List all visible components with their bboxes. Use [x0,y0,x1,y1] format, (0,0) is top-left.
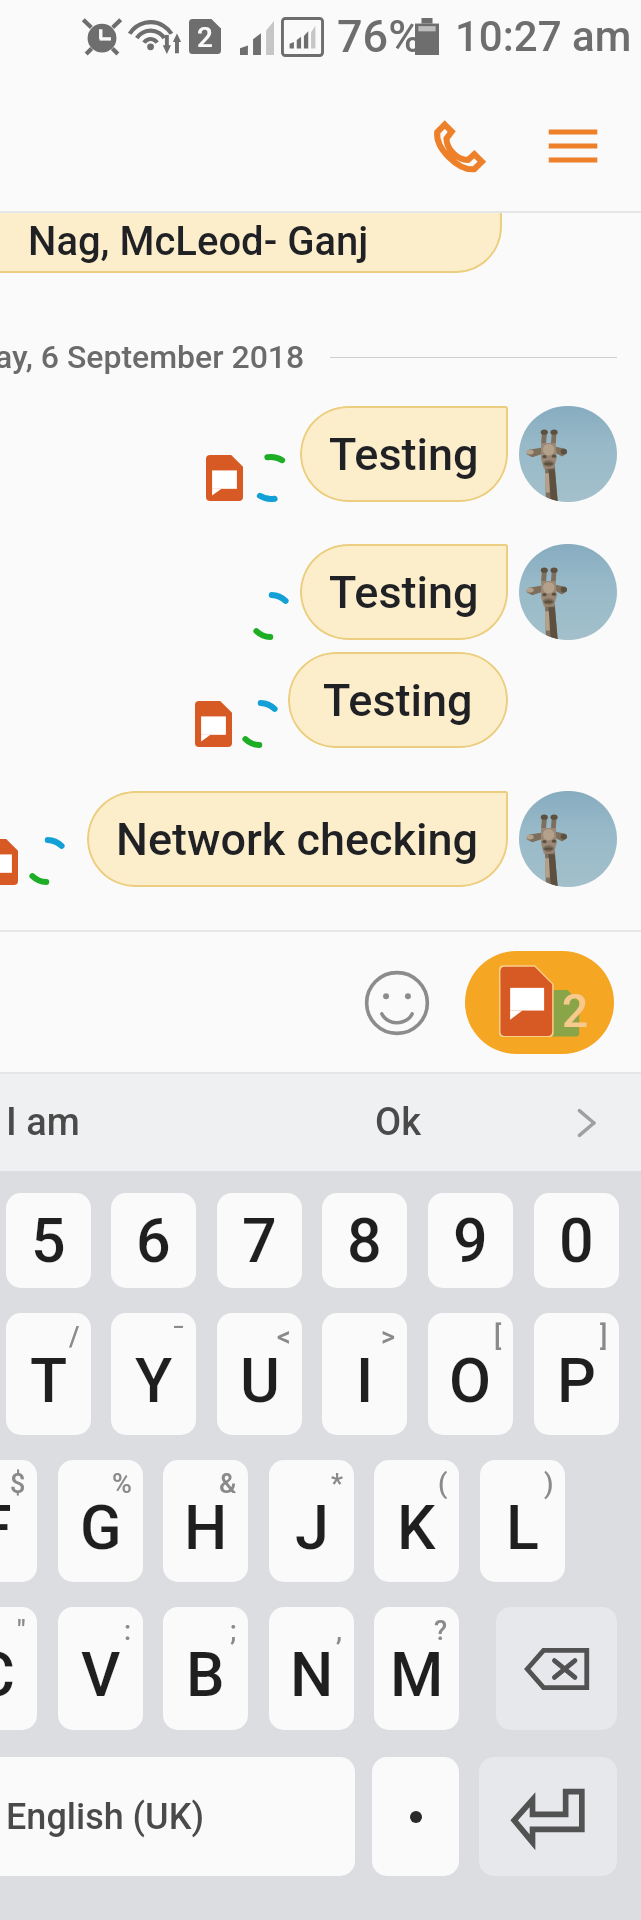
button[interactable]: Enter [479,1757,617,1876]
button[interactable]: V [58,1607,143,1730]
button[interactable]: Testing [300,544,508,640]
button[interactable]: H [163,1460,248,1582]
button[interactable]: B [163,1607,248,1730]
staticText: G [80,1492,122,1563]
button[interactable]: 9 [428,1193,513,1288]
button[interactable]: Testing [300,406,508,502]
staticText: Testing [329,566,479,619]
button[interactable]: Send message [465,951,614,1054]
staticText: > [381,1321,396,1353]
staticText: O [449,1345,492,1416]
button[interactable]: Y [111,1313,196,1435]
staticText: ; [230,1615,237,1647]
button[interactable]: U [217,1313,302,1435]
staticText: < [277,1321,291,1353]
button[interactable]: Call [413,98,509,194]
button[interactable]: Testing [288,652,508,748]
button[interactable]: Emoji [359,965,435,1041]
button[interactable]: I [322,1313,407,1435]
staticText: 7 [242,1205,277,1276]
staticText: 9 [453,1205,488,1276]
button[interactable]: Contact photo [519,544,617,640]
button[interactable]: Backspace [496,1607,617,1730]
button[interactable]: Nag, McLeod- Ganj [0,213,502,273]
staticText: M [390,1639,444,1710]
staticText: L [506,1492,539,1563]
button[interactable]: K [374,1460,459,1582]
staticText: " [17,1615,26,1647]
staticText: ? [434,1615,448,1647]
button[interactable]: F [0,1460,37,1582]
staticText: * [331,1468,343,1500]
staticText: T [30,1345,68,1416]
button[interactable]: L [480,1460,565,1582]
staticText: Network checking [116,813,479,866]
button[interactable]: Contact photo [519,791,617,887]
staticText: : [124,1615,132,1647]
staticText: , [336,1615,343,1647]
button[interactable]: I am [0,1074,265,1171]
staticText: H [184,1492,228,1563]
staticText: English (UK) [6,1796,204,1838]
button[interactable]: Ok [265,1074,531,1171]
staticText: Nag, McLeod- Ganj [28,218,369,265]
button[interactable]: 6 [111,1193,196,1288]
button[interactable]: T [6,1313,91,1435]
button[interactable]: P [534,1313,619,1435]
staticText: [ [494,1321,502,1353]
button[interactable]: 5 [6,1193,91,1288]
button[interactable]: N [269,1607,354,1730]
staticText: J [295,1492,329,1563]
staticText: F [0,1492,12,1563]
button[interactable]: English (UK) [0,1757,355,1876]
button[interactable]: More suggestions [531,1074,641,1171]
staticText: 8 [347,1205,382,1276]
staticText: N [290,1639,334,1710]
staticText: % [112,1468,132,1500]
staticText: Ok [375,1100,421,1145]
staticText: P [557,1345,596,1416]
staticText: B [186,1639,225,1710]
staticText: 10:27 am [455,12,632,61]
staticText: I am [6,1100,80,1145]
staticText: U [240,1345,280,1416]
staticText: Testing [323,674,473,727]
button[interactable]: 8 [322,1193,407,1288]
staticText: 2 [197,21,213,54]
staticText: K [397,1492,436,1563]
staticText: ] [600,1321,608,1353]
staticText: 0 [559,1205,594,1276]
button[interactable]: Network checking [87,791,508,887]
staticText: / [69,1321,80,1353]
button[interactable]: 7 [217,1193,302,1288]
staticText: 6 [136,1205,171,1276]
staticText: ( [438,1468,448,1500]
staticText: C [0,1639,15,1710]
staticText: $ [10,1468,26,1500]
staticText: 5 [31,1205,66,1276]
button[interactable]: More options [525,98,621,194]
staticText: ¯ [172,1321,185,1353]
staticText: I [356,1345,374,1416]
staticText: Testing [329,428,479,481]
button[interactable]: O [428,1313,513,1435]
button[interactable]: 0 [534,1193,619,1288]
button[interactable]: Contact photo [519,406,617,502]
button[interactable]: C [0,1607,37,1730]
button[interactable]: J [269,1460,354,1582]
staticText: ay, 6 September 2018 [0,338,305,376]
staticText: 76% [337,10,422,63]
button[interactable]: M [374,1607,459,1730]
button[interactable]: Period [372,1757,459,1876]
staticText: & [219,1468,237,1500]
staticText: ) [544,1468,554,1500]
staticText: V [81,1639,121,1710]
button[interactable]: G [58,1460,143,1582]
staticText: 2 [562,984,589,1038]
staticText: Y [135,1345,173,1416]
